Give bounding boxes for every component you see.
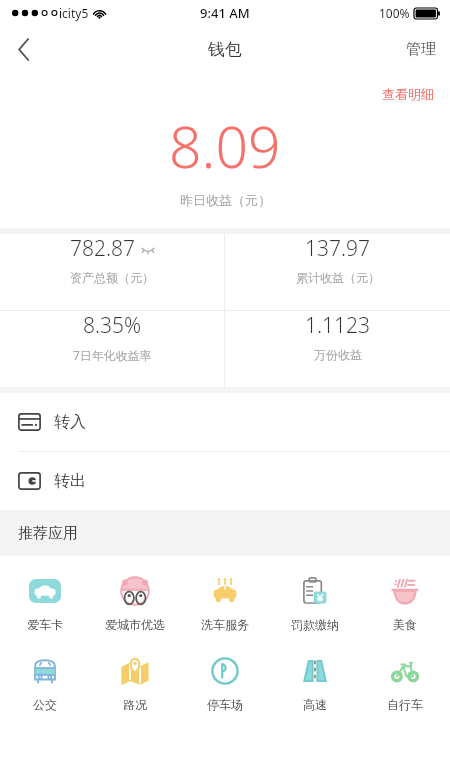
staticText: 查看明细	[382, 86, 434, 102]
staticText: 9:41 AM	[200, 4, 250, 22]
staticText: icity5	[59, 5, 89, 21]
staticText: 公交	[33, 697, 57, 712]
button[interactable]: 罚款缴纳	[270, 570, 360, 636]
staticText: 8.35%	[83, 311, 142, 340]
staticText: 137.97	[305, 234, 371, 263]
button[interactable]: 管理	[392, 30, 450, 69]
staticText: 资产总额（元）	[70, 270, 154, 285]
staticText: 8.09	[169, 107, 281, 185]
button[interactable]: 爱车卡	[0, 570, 90, 636]
button[interactable]: 137.97	[225, 234, 450, 285]
button[interactable]: 查看明细	[370, 80, 446, 108]
staticText: 钱包	[208, 39, 242, 60]
staticText: 美食	[393, 617, 417, 632]
staticText: 高速	[303, 697, 327, 712]
staticText: 罚款缴纳	[291, 617, 339, 632]
staticText: 推荐应用	[18, 524, 78, 543]
button[interactable]: 1.1123	[225, 311, 450, 362]
staticText: 转出	[54, 471, 86, 491]
button[interactable]: 782.87	[0, 234, 224, 285]
staticText: 1.1123	[305, 311, 371, 340]
button[interactable]: 转入	[0, 393, 450, 451]
button[interactable]: 公交	[0, 650, 90, 716]
button[interactable]: 转出	[0, 452, 450, 510]
button[interactable]: 美食	[360, 570, 450, 636]
button[interactable]: 爱城市优选	[90, 570, 180, 636]
button[interactable]: 停车场	[180, 650, 270, 716]
staticText: 自行车	[387, 697, 423, 712]
staticText: 爱车卡	[27, 617, 63, 632]
staticText: 7日年化收益率	[73, 347, 152, 363]
staticText: 转入	[54, 412, 86, 432]
staticText: 爱城市优选	[105, 617, 165, 632]
button[interactable]: 自行车	[360, 650, 450, 716]
staticText: 万份收益	[314, 347, 362, 362]
staticText: 100%	[379, 5, 410, 21]
staticText: 洗车服务	[201, 617, 249, 632]
button[interactable]: 路况	[90, 650, 180, 716]
staticText: 停车场	[207, 697, 243, 712]
staticText: 管理	[406, 40, 436, 59]
button[interactable]: 高速	[270, 650, 360, 716]
button[interactable]: 洗车服务	[180, 570, 270, 636]
staticText: 路况	[123, 697, 147, 712]
button[interactable]: Back	[0, 26, 48, 72]
button[interactable]: 8.35%	[0, 311, 224, 363]
staticText: 782.87	[70, 234, 136, 263]
staticText: 昨日收益（元）	[180, 192, 271, 208]
staticText: 累计收益（元）	[296, 270, 380, 285]
